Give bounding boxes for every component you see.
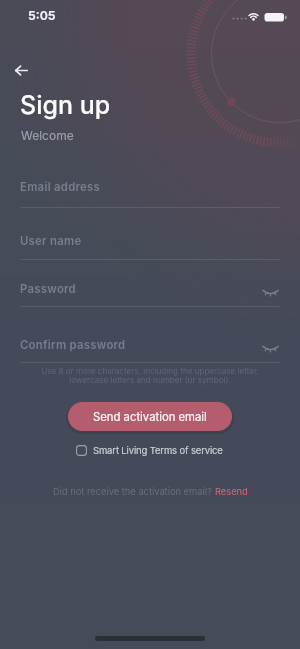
staticText: Password — [20, 282, 76, 296]
staticText: Did not receive the activation email? — [53, 486, 215, 497]
staticText: Confirm password — [20, 338, 126, 352]
button[interactable]: Send activation email — [68, 402, 232, 431]
button[interactable]: Email address — [20, 174, 280, 208]
staticText: Send activation email — [93, 410, 207, 424]
button[interactable]: Smart Living Terms of service — [76, 445, 223, 456]
staticText: Email address — [20, 180, 101, 194]
button[interactable] — [7, 56, 35, 84]
button[interactable]: Confirm password — [20, 332, 280, 363]
staticText: User name — [20, 234, 82, 248]
button[interactable]: User name — [20, 228, 280, 260]
staticText: Use 8 or more characters, including the … — [0, 366, 300, 385]
staticText: Sign up — [20, 90, 111, 120]
staticText: Smart Living Terms of service — [93, 445, 223, 456]
button[interactable]: Password — [20, 276, 280, 307]
staticText: 5:05 — [28, 8, 56, 23]
staticText: Welcome — [21, 128, 74, 143]
button[interactable]: Resend — [215, 486, 248, 497]
